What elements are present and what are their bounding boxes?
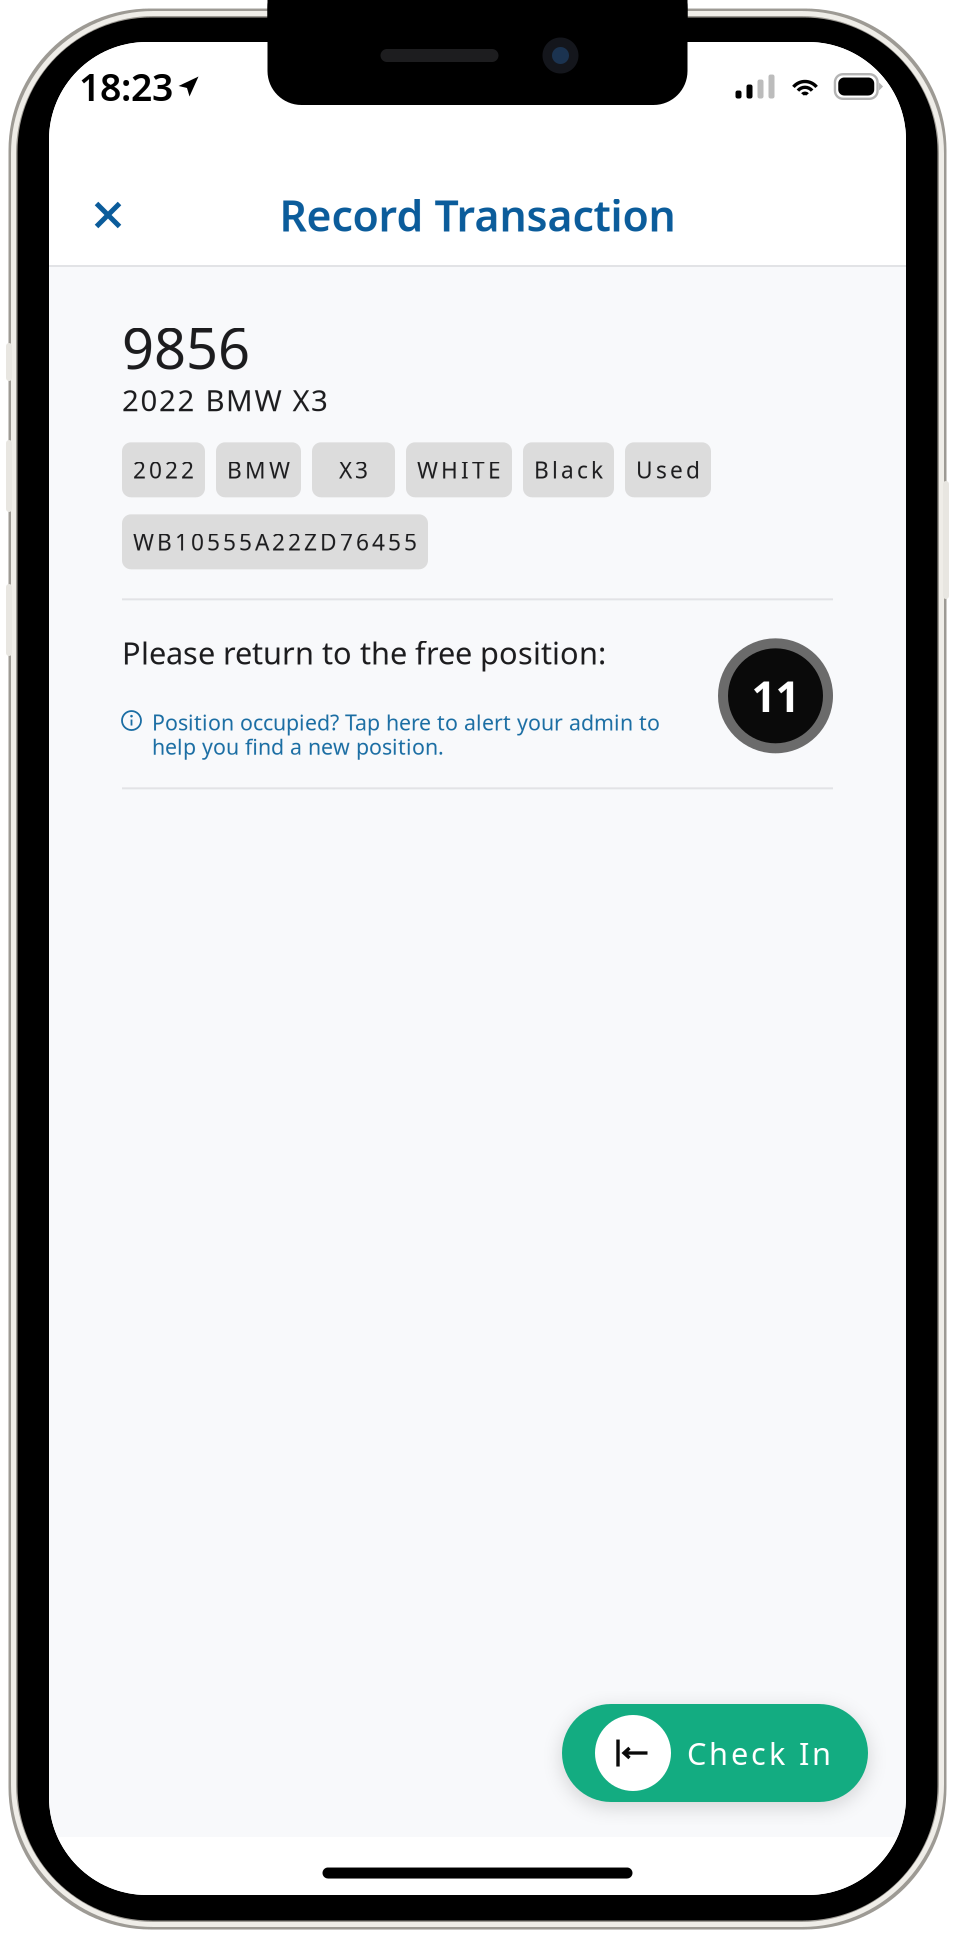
staticText: 18:23 bbox=[79, 62, 173, 111]
staticText: WB10555A22ZD76455 bbox=[133, 527, 417, 557]
staticText: Used bbox=[636, 455, 700, 485]
button[interactable]: Close bbox=[80, 187, 136, 243]
staticText: Check In bbox=[687, 1733, 831, 1773]
staticText: Record Transaction bbox=[279, 187, 675, 243]
staticText: 11 bbox=[751, 667, 799, 724]
staticText: Please return to the free position: bbox=[122, 632, 606, 673]
button[interactable]: Check In bbox=[562, 1704, 868, 1802]
staticText: 2022 BMW X3 bbox=[122, 380, 328, 419]
staticText: Black bbox=[534, 455, 603, 485]
staticText: X3 bbox=[339, 455, 368, 485]
staticText: WHITE bbox=[417, 455, 501, 485]
staticText: 2022 bbox=[133, 455, 194, 485]
button[interactable]: Position occupied? Tap here to alert you… bbox=[122, 708, 672, 761]
staticText: BMW bbox=[227, 455, 290, 485]
staticText: 9856 bbox=[122, 310, 250, 384]
staticText: Position occupied? Tap here to alert you… bbox=[152, 708, 660, 761]
